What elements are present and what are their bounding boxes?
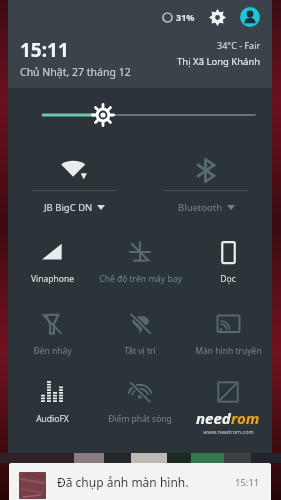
- staticText: Chế độ trên máy bay: [99, 273, 182, 285]
- staticText: rom: [231, 408, 260, 428]
- staticText: 15:11: [235, 476, 260, 489]
- button[interactable]: Dọc: [184, 236, 272, 294]
- button[interactable]: Screenshot: [184, 376, 272, 440]
- button[interactable]: Brightness: [8, 102, 272, 128]
- staticText: JB BigC DN: [44, 201, 93, 214]
- staticText: Đèn nháy: [33, 345, 72, 357]
- staticText: Bluetooth: [178, 201, 223, 214]
- staticText: Thị Xã Long Khánh: [177, 55, 261, 68]
- staticText: Đã chụp ảnh màn hình.: [57, 474, 189, 490]
- button[interactable]: Đèn nháy: [8, 308, 96, 366]
- button[interactable]: Vinaphone: [8, 236, 96, 294]
- staticText: www.needrom.com: [203, 428, 254, 435]
- button[interactable]: 34°C - Fair: [177, 37, 261, 68]
- staticText: Tắt vị trí: [124, 345, 156, 357]
- button[interactable]: Chế độ trên máy bay: [96, 236, 184, 294]
- staticText: 31%: [176, 11, 195, 23]
- staticText: Chủ Nhật, 27 tháng 12: [20, 65, 131, 79]
- button[interactable]: Settings: [207, 7, 227, 27]
- button[interactable]: 15:11: [20, 37, 177, 79]
- button[interactable]: Điểm phát sóng: [96, 376, 184, 440]
- staticText: Điểm phát sóng: [108, 413, 172, 425]
- staticText: AudioFX: [36, 413, 69, 425]
- button[interactable]: Bluetooth: [140, 150, 272, 224]
- button[interactable]: Đã chụp ảnh màn hình.: [9, 463, 271, 500]
- staticText: Màn hình truyền: [195, 345, 262, 357]
- staticText: need: [196, 408, 231, 428]
- staticText: Dọc: [220, 273, 236, 285]
- staticText: Vinaphone: [31, 273, 74, 285]
- button[interactable]: Màn hình truyền: [184, 308, 272, 366]
- button[interactable]: AudioFX: [8, 376, 96, 440]
- button[interactable]: JB BigC DN: [8, 150, 140, 224]
- staticText: 15:11: [20, 37, 69, 63]
- button[interactable]: User profile: [239, 6, 261, 28]
- staticText: 34°C - Fair: [217, 39, 261, 51]
- button[interactable]: Tắt vị trí: [96, 308, 184, 366]
